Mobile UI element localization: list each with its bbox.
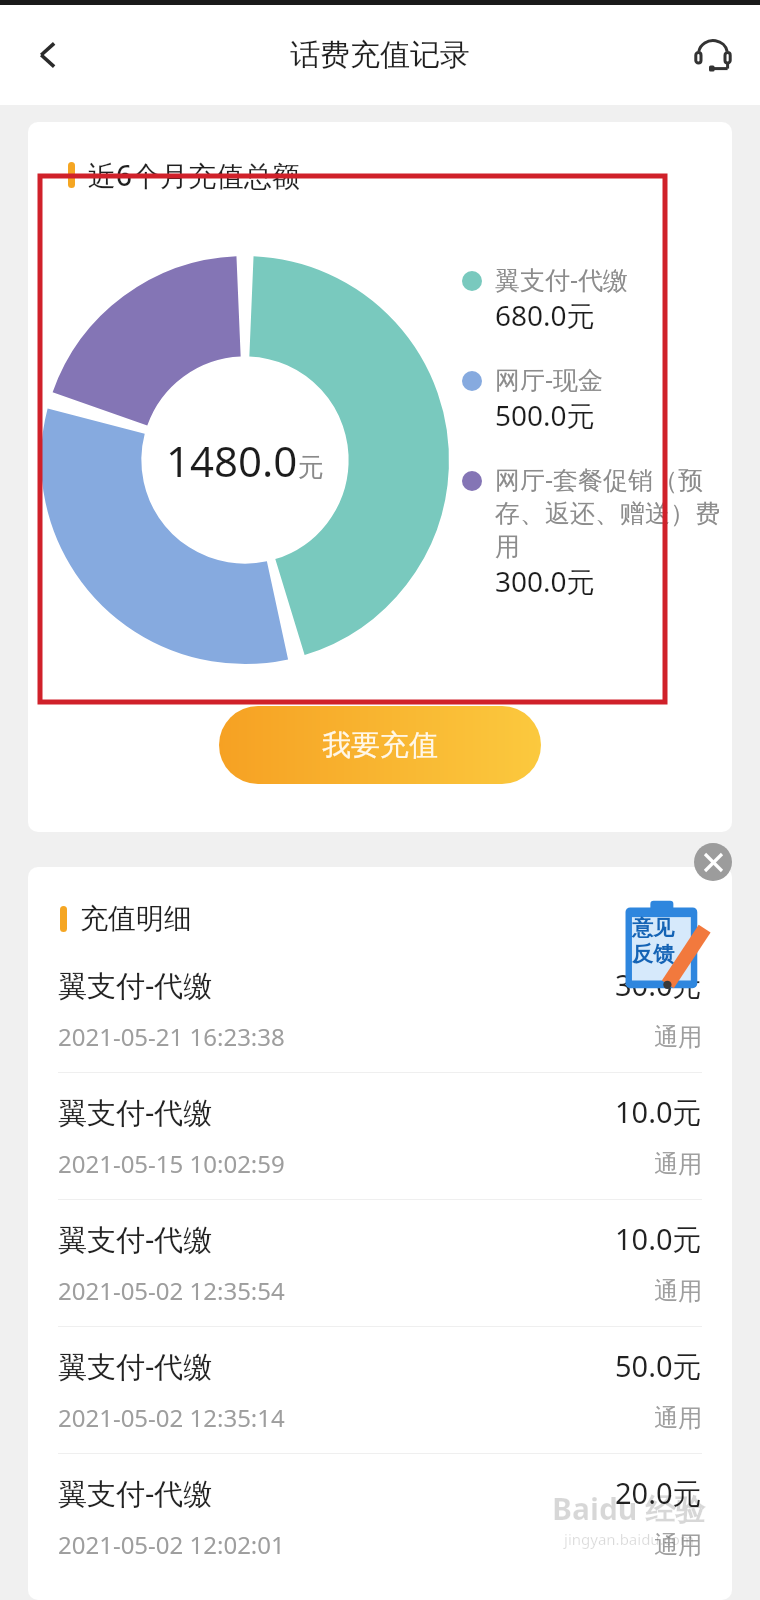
staticText: jingyan.baidu.com bbox=[564, 1529, 694, 1549]
button[interactable]: 翼支付-代缴 bbox=[462, 262, 732, 334]
staticText: 翼支付-代缴 bbox=[58, 1473, 213, 1513]
button[interactable]: Back bbox=[12, 19, 84, 91]
staticText: 充值明细 bbox=[80, 901, 192, 936]
staticText: 近6个月充值总额 bbox=[88, 156, 301, 194]
staticText: 网厅-套餐促销（预存、返还、赠送）费用 bbox=[495, 462, 722, 562]
staticText: 2021-05-02 12:02:01 bbox=[58, 1528, 285, 1561]
staticText: 翼支付-代缴 bbox=[58, 1219, 213, 1259]
button[interactable]: 翼支付-代缴 bbox=[28, 1454, 732, 1580]
button[interactable]: 翼支付-代缴 bbox=[28, 1327, 732, 1453]
staticText: 1480.0 bbox=[166, 432, 298, 489]
staticText: 2021-05-02 12:35:14 bbox=[58, 1401, 285, 1434]
staticText: 翼支付-代缴 bbox=[58, 1346, 213, 1386]
staticText: 通用 bbox=[654, 1022, 702, 1052]
staticText: 通用 bbox=[654, 1276, 702, 1306]
staticText: 翼支付-代缴 bbox=[58, 965, 213, 1005]
button[interactable]: 我要充值 bbox=[219, 706, 541, 784]
staticText: 元 bbox=[298, 451, 324, 484]
button[interactable]: Close feedback bbox=[694, 843, 732, 881]
staticText: 网厅-现金 bbox=[495, 362, 604, 396]
staticText: 翼支付-代缴 bbox=[58, 1092, 213, 1132]
staticText: 反馈 bbox=[632, 941, 674, 967]
button[interactable]: 翼支付-代缴 bbox=[28, 1200, 732, 1326]
staticText: 300.0元 bbox=[495, 562, 595, 600]
staticText: 2021-05-21 16:23:38 bbox=[58, 1020, 285, 1053]
staticText: 20.0元 bbox=[615, 1473, 702, 1513]
button[interactable]: 翼支付-代缴 bbox=[28, 1073, 732, 1199]
staticText: 话费充值记录 bbox=[290, 36, 470, 74]
staticText: 50.0元 bbox=[615, 1346, 702, 1386]
button[interactable]: Feedback bbox=[620, 896, 712, 992]
staticText: 2021-05-02 12:35:54 bbox=[58, 1274, 285, 1307]
staticText: 30.0元 bbox=[615, 965, 702, 1005]
staticText: 通用 bbox=[654, 1403, 702, 1433]
staticText: 意见 bbox=[632, 915, 674, 941]
button[interactable]: 网厅-现金 bbox=[462, 362, 732, 434]
staticText: 通用 bbox=[654, 1149, 702, 1179]
staticText: 翼支付-代缴 bbox=[495, 262, 629, 296]
staticText: 680.0元 bbox=[495, 296, 595, 334]
staticText: 2021-05-15 10:02:59 bbox=[58, 1147, 285, 1180]
staticText: 我要充值 bbox=[322, 727, 438, 764]
staticText: 通用 bbox=[654, 1530, 702, 1560]
button[interactable]: Customer service bbox=[680, 22, 746, 88]
button[interactable]: 网厅-套餐促销（预存、返还、赠送）费用 bbox=[462, 462, 732, 600]
staticText: 10.0元 bbox=[615, 1219, 702, 1259]
staticText: 500.0元 bbox=[495, 396, 595, 434]
staticText: Baidu 经验 bbox=[552, 1488, 706, 1529]
button[interactable]: 翼支付-代缴 bbox=[28, 946, 732, 1072]
staticText: 10.0元 bbox=[615, 1092, 702, 1132]
